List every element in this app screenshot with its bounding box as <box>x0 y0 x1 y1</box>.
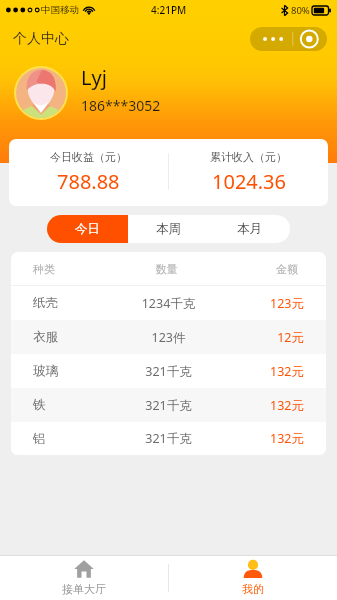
button[interactable]: 衣服 <box>11 320 326 354</box>
button[interactable]: 玻璃 <box>11 354 326 388</box>
button[interactable]: 接单大厅 <box>0 556 168 600</box>
staticText: 321千克 <box>116 363 221 380</box>
staticText: 123元 <box>221 295 304 312</box>
staticText: 本月 <box>237 221 262 237</box>
staticText: 金额 <box>221 262 298 276</box>
staticText: 纸壳 <box>33 295 116 311</box>
staticText: 今日 <box>75 221 100 237</box>
button[interactable]: 纸壳 <box>11 286 326 320</box>
staticText: 我的 <box>242 582 264 596</box>
staticText: 321千克 <box>116 397 221 414</box>
staticText: 本周 <box>156 221 181 237</box>
button[interactable]: 铝 <box>11 422 326 455</box>
staticText: 1234千克 <box>116 295 221 312</box>
staticText: 132元 <box>221 430 304 447</box>
staticText: 接单大厅 <box>62 582 106 596</box>
button[interactable]: 今日 <box>47 215 128 243</box>
staticText: 铝 <box>33 431 116 447</box>
staticText: 衣服 <box>33 329 116 345</box>
staticText: 4:21PM <box>151 3 187 17</box>
staticText: 个人中心 <box>13 30 69 48</box>
staticText: 中国移动 <box>41 4 79 16</box>
staticText: 132元 <box>221 397 304 414</box>
staticText: 今日收益（元） <box>50 150 127 164</box>
staticText: Lyj <box>81 64 107 91</box>
button[interactable]: 累计收入（元） <box>169 139 328 206</box>
staticText: 186***3052 <box>81 96 161 115</box>
button[interactable]: 今日收益（元） <box>9 139 168 206</box>
button[interactable]: Menu <box>250 27 327 51</box>
button[interactable]: 铁 <box>11 388 326 422</box>
staticText: 80% <box>291 4 310 17</box>
staticText: 玻璃 <box>33 363 116 379</box>
staticText: 12元 <box>221 329 304 346</box>
staticText: 铁 <box>33 397 116 413</box>
staticText: 123件 <box>116 329 221 346</box>
button[interactable]: 我的 <box>169 556 337 600</box>
staticText: 1024.36 <box>212 168 286 195</box>
staticText: 788.88 <box>57 168 120 195</box>
staticText: 种类 <box>33 262 116 276</box>
button[interactable]: 本月 <box>209 215 290 243</box>
staticText: 321千克 <box>116 430 221 447</box>
button[interactable]: 本周 <box>128 215 209 243</box>
staticText: 累计收入（元） <box>210 150 287 164</box>
staticText: 132元 <box>221 363 304 380</box>
staticText: 数量 <box>116 262 217 276</box>
